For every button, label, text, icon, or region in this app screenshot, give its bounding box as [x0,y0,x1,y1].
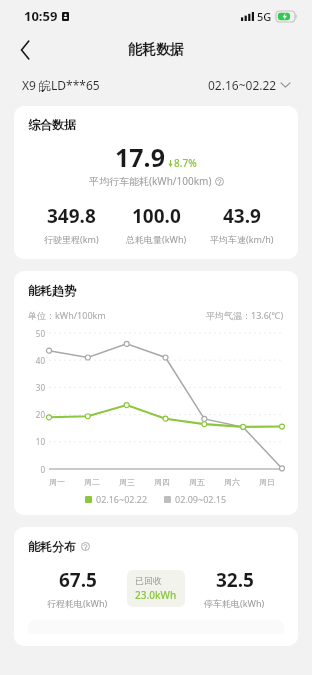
staticText: 23.0kWh [135,588,177,602]
staticText: 行程耗电(kWh) [47,597,108,609]
staticText: 20 [28,409,45,420]
staticText: 平均行车能耗(kWh/100km) [89,174,212,188]
staticText: 单位：kWh/100km [28,309,106,321]
staticText: 02.16~02.22 [96,493,148,505]
staticText: 02.16~02.22 [208,77,277,93]
staticText: 8.7% [174,156,197,170]
staticText: X9 皖LD***65 [22,77,100,93]
staticText: 综合数据 [28,117,76,132]
staticText: 能耗趋势 [28,283,76,298]
staticText: 总耗电量(kWh) [126,233,187,245]
staticText: 周六 [224,477,240,487]
staticText: 5G [257,9,272,24]
staticText: 周五 [189,477,205,487]
staticText: 周三 [119,477,135,487]
staticText: 行驶里程(km) [44,233,99,245]
staticText: 02.09~02.15 [175,493,227,505]
button[interactable]: 02.16~02.22 [208,77,290,93]
staticText: 10:59 [24,7,58,25]
staticText: 已回收 [135,575,162,586]
staticText: 40 [28,355,45,366]
staticText: 周一 [49,477,65,487]
staticText: 30 [28,382,45,393]
staticText: 349.8 [47,203,96,229]
staticText: 停车耗电(kWh) [204,597,265,609]
staticText: 能耗数据 [128,41,184,59]
staticText: 周日 [259,477,275,487]
staticText: 50 [28,328,45,339]
staticText: 能耗分布 [28,539,76,554]
staticText: 周二 [84,477,100,487]
staticText: 32.5 [216,567,254,593]
staticText: 平均车速(km/h) [210,233,274,245]
staticText: 43.9 [223,203,261,229]
staticText: 67.5 [59,567,97,593]
staticText: 100.0 [132,203,181,229]
staticText: 周四 [154,477,170,487]
staticText: 10 [28,436,45,447]
staticText: 平均气温：13.6(℃) [206,309,284,321]
staticText: 0 [28,464,45,475]
button[interactable]: Back [8,33,42,67]
staticText: 17.9 [115,140,165,174]
